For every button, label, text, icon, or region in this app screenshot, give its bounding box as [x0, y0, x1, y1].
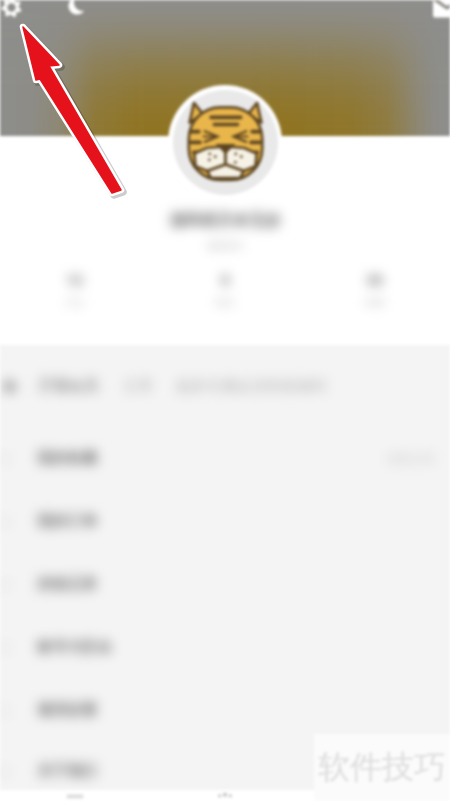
staticText: 超多专属会员特权福利 [176, 377, 326, 396]
staticText: 通用设置 [37, 701, 97, 720]
staticText: 浏览记录 [37, 575, 97, 594]
staticText: 我的订单 [37, 512, 97, 531]
button[interactable]: 36 [361, 265, 389, 313]
staticText: 关于我们 [37, 762, 97, 781]
button[interactable]: 账号与安全 [0, 616, 450, 679]
button[interactable]: 我的订单 [0, 490, 450, 553]
button[interactable]: 我的收藏 [0, 427, 450, 490]
button[interactable]: Messages [433, 0, 450, 23]
staticText: 开通会员 [38, 377, 98, 396]
button[interactable]: 浏览记录 [0, 553, 450, 616]
staticText: 账号与安全 [37, 638, 112, 657]
button[interactable]: 通用设置 [0, 679, 450, 742]
staticText: 36 [366, 269, 384, 289]
button[interactable]: Profile photo [168, 85, 282, 199]
button[interactable]: Dark mode [66, 0, 88, 17]
button[interactable]: 会 [0, 359, 450, 413]
button[interactable]: Discover [150, 794, 300, 801]
staticText: 8 [221, 269, 230, 289]
button[interactable]: Settings [1, 0, 22, 18]
button[interactable]: 12 [61, 265, 89, 313]
staticText: 会 [2, 377, 17, 396]
button[interactable]: Home [0, 794, 150, 801]
staticText: 12 [66, 269, 84, 289]
staticText: 软件技巧 [318, 747, 446, 787]
button[interactable]: 8 [211, 265, 239, 313]
staticText: 清风明月本无价 [169, 211, 281, 231]
button[interactable]: 关于我们 [0, 742, 450, 801]
staticText: 我的收藏 [37, 449, 97, 468]
